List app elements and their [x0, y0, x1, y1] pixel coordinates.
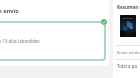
staticText: de envío [0, 7, 19, 15]
staticText: Envío estándar [117, 50, 140, 56]
button[interactable] [0, 21, 106, 61]
button[interactable]: Envío estándar [117, 50, 140, 56]
staticText: Resumen de [117, 4, 140, 10]
other: Opción seleccionada [101, 19, 107, 25]
staticText: y 13 días laborables [0, 38, 40, 44]
button[interactable] [120, 15, 136, 37]
staticText: Total a pa [117, 63, 137, 69]
